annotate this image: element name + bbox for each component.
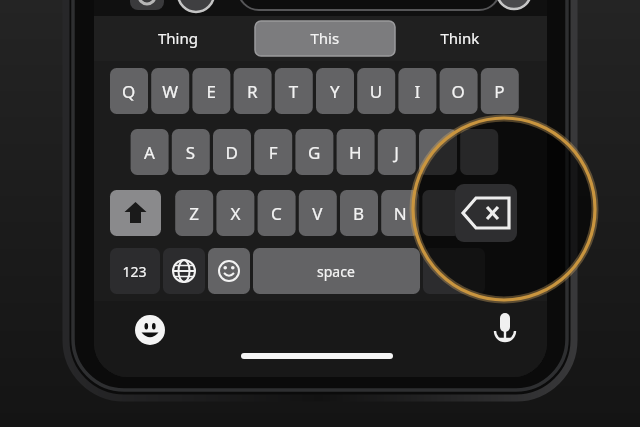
button[interactable]: Letter key xyxy=(151,68,189,114)
button[interactable]: Letter key xyxy=(339,190,377,236)
button[interactable]: Letter key xyxy=(336,129,374,175)
button[interactable]: Letter key xyxy=(253,129,291,175)
button[interactable]: Letter key xyxy=(377,129,415,175)
button[interactable]: Letter key xyxy=(233,68,271,114)
button[interactable]: Letter key xyxy=(130,129,168,175)
button[interactable]: Emoji picker xyxy=(134,314,166,346)
button[interactable]: Letter key xyxy=(298,190,336,236)
button[interactable]: Letter key xyxy=(381,190,419,236)
button[interactable]: Backspace xyxy=(455,184,517,242)
button[interactable]: Think suggestion xyxy=(400,16,547,61)
button[interactable]: Letter key xyxy=(357,68,395,114)
button[interactable]: Letter key xyxy=(212,129,250,175)
button[interactable]: Space xyxy=(253,248,420,294)
button[interactable]: Numbers xyxy=(110,248,160,294)
button[interactable]: Dictation xyxy=(489,309,521,345)
button[interactable]: Letter key xyxy=(175,190,213,236)
button[interactable]: Letter key xyxy=(110,68,148,114)
button[interactable]: Letter key xyxy=(418,129,456,175)
button[interactable]: Shift xyxy=(110,190,161,236)
button[interactable]: Emoji xyxy=(208,248,250,294)
button[interactable]: Letter key xyxy=(274,68,312,114)
button[interactable]: Letter key xyxy=(257,190,295,236)
button[interactable]: Letter key xyxy=(459,129,497,175)
button[interactable]: Letter key xyxy=(439,68,477,114)
button[interactable]: Letter key xyxy=(398,68,436,114)
button[interactable]: Letter key xyxy=(216,190,254,236)
button[interactable]: Letter key xyxy=(422,190,460,236)
button[interactable]: Letter key xyxy=(294,129,332,175)
button[interactable]: Switch keyboard xyxy=(163,248,205,294)
button[interactable]: This suggestion xyxy=(255,21,395,56)
button[interactable]: Letter key xyxy=(192,68,230,114)
button[interactable]: Letter key xyxy=(480,68,518,114)
button[interactable]: Letter key xyxy=(171,129,209,175)
button[interactable]: Letter key xyxy=(316,68,354,114)
button[interactable]: Thing suggestion xyxy=(94,16,254,61)
button[interactable]: Return xyxy=(423,248,485,294)
